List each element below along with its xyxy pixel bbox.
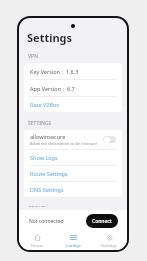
button[interactable]: allowinsecure bbox=[24, 130, 122, 149]
staticText: Connect bbox=[92, 218, 112, 225]
staticText: Route Settings bbox=[30, 170, 68, 177]
staticText: Rate V2Box bbox=[30, 101, 60, 108]
button[interactable]: Rate V2Box bbox=[24, 97, 122, 112]
staticText: Configs bbox=[66, 243, 81, 249]
button[interactable]: Route Settings bbox=[24, 166, 122, 181]
staticText: Key Version : bbox=[30, 68, 63, 75]
staticText: allowinsecure bbox=[30, 133, 66, 140]
staticText: ABOUT bbox=[28, 205, 45, 207]
staticText: Not connected bbox=[29, 218, 64, 225]
button[interactable]: Home bbox=[19, 232, 55, 250]
staticText: Show Logs bbox=[30, 154, 58, 161]
staticText: App Version : bbox=[30, 85, 64, 92]
button[interactable]: App Version : bbox=[24, 80, 122, 96]
staticText: 1.6.3 bbox=[66, 68, 79, 75]
button[interactable]: Show Logs bbox=[24, 150, 122, 165]
staticText: Allow the destination to be insecure bbox=[30, 141, 98, 146]
other: Allow insecure toggle bbox=[103, 136, 116, 143]
staticText: Home bbox=[31, 243, 43, 249]
staticText: Settings bbox=[27, 30, 73, 45]
button[interactable]: Key Version : bbox=[24, 63, 122, 79]
staticText: 6.7 bbox=[67, 85, 75, 92]
button[interactable]: Connect bbox=[86, 214, 118, 228]
button[interactable]: DNS Settings bbox=[24, 182, 122, 197]
staticText: Settings bbox=[101, 243, 117, 249]
button[interactable]: Settings bbox=[91, 232, 127, 250]
staticText: SETTINGS bbox=[28, 120, 52, 127]
staticText: VPN bbox=[28, 53, 39, 60]
button[interactable]: Configs bbox=[55, 232, 91, 250]
staticText: DNS Settings bbox=[30, 186, 64, 193]
